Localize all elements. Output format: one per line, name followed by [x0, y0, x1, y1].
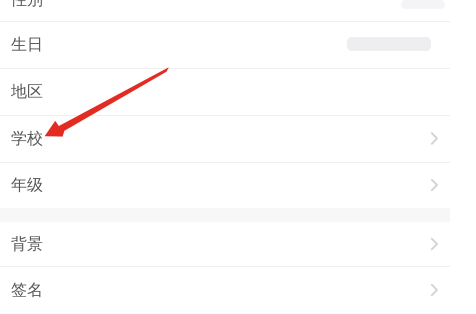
- staticText: 性别: [11, 0, 43, 9]
- button[interactable]: 生日: [0, 21, 476, 68]
- button[interactable]: 地区: [0, 68, 476, 115]
- staticText: 背景: [11, 234, 43, 254]
- staticText: 生日: [11, 35, 43, 54]
- staticText: 签名: [11, 280, 43, 300]
- button[interactable]: 背景: [0, 222, 476, 266]
- button[interactable]: 性别: [0, 0, 476, 21]
- button[interactable]: 年级: [0, 162, 476, 208]
- button[interactable]: 学校: [0, 115, 476, 162]
- staticText: 年级: [11, 175, 43, 195]
- staticText: 地区: [11, 82, 43, 101]
- staticText: 学校: [11, 129, 43, 148]
- button[interactable]: 签名: [0, 266, 476, 314]
